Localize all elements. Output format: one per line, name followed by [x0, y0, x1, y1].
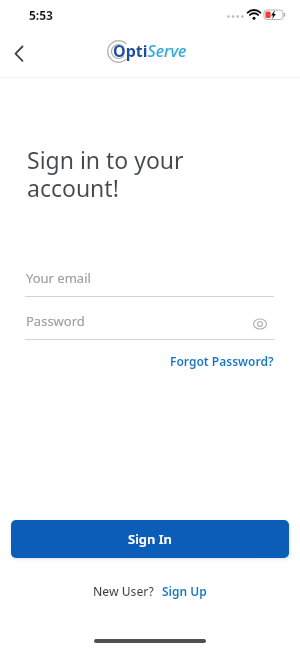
staticText: Sign Up: [162, 583, 207, 599]
staticText: Sign in to your account!: [27, 144, 184, 204]
staticText: Password: [26, 312, 85, 330]
button[interactable]: Password: [25, 308, 274, 340]
staticText: Forgot Password?: [170, 353, 274, 369]
button[interactable]: Forgot Password?: [144, 350, 280, 372]
button[interactable]: [6, 42, 32, 66]
staticText: Your email: [26, 269, 91, 287]
staticText: 5:53: [29, 7, 53, 23]
button[interactable]: Your email: [25, 265, 274, 297]
staticText: OptiServe: [113, 40, 187, 62]
staticText: Sign In: [128, 530, 172, 548]
staticText: New User?: [93, 583, 154, 599]
button[interactable]: Sign Up: [162, 583, 207, 599]
button[interactable]: Sign In: [11, 520, 289, 558]
